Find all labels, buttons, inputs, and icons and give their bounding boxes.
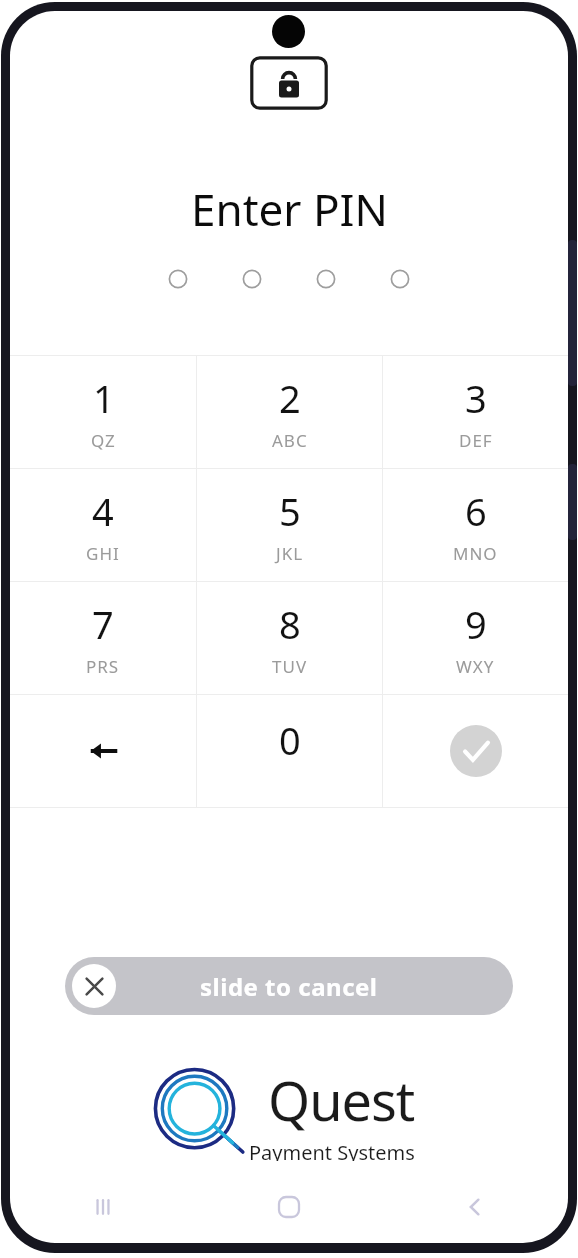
staticText: slide to cancel — [200, 970, 378, 1003]
button[interactable]: Back — [382, 1181, 568, 1233]
button[interactable]: Recent apps — [10, 1181, 196, 1233]
staticText: 5 — [279, 485, 301, 537]
staticText: Payment Systems — [249, 1139, 415, 1161]
staticText: Quest — [268, 1063, 415, 1137]
staticText: 7 — [92, 598, 114, 650]
staticText: PRS — [86, 655, 120, 678]
button[interactable]: 0 — [197, 695, 382, 807]
staticText: Enter PIN — [191, 179, 388, 239]
button[interactable]: Confirm — [383, 695, 568, 807]
staticText: MNO — [453, 542, 498, 565]
staticText: 4 — [92, 485, 114, 537]
staticText: GHI — [86, 542, 120, 565]
staticText: 2 — [279, 372, 301, 424]
staticText: 3 — [465, 372, 487, 424]
staticText: 8 — [279, 598, 301, 650]
other: Cancel — [72, 964, 116, 1008]
button[interactable]: 1 — [10, 356, 196, 468]
staticText: WXY — [456, 655, 495, 678]
staticText: 6 — [465, 485, 487, 537]
button[interactable]: Backspace — [10, 695, 196, 807]
staticText: DEF — [459, 429, 493, 452]
staticText: JKL — [276, 542, 304, 565]
staticText: 9 — [465, 598, 487, 650]
button[interactable]: 8 — [197, 582, 382, 694]
button[interactable]: Home — [196, 1181, 382, 1233]
button[interactable]: 4 — [10, 469, 196, 581]
button[interactable]: 7 — [10, 582, 196, 694]
button[interactable]: 2 — [197, 356, 382, 468]
staticText: QZ — [91, 429, 116, 452]
button[interactable]: slide to cancel — [65, 957, 513, 1015]
staticText: TUV — [272, 655, 308, 678]
button[interactable]: 3 — [383, 356, 568, 468]
staticText: ABC — [272, 429, 308, 452]
staticText: 1 — [93, 372, 115, 424]
button[interactable]: 9 — [383, 582, 568, 694]
staticText: 0 — [279, 714, 301, 766]
button[interactable]: 5 — [197, 469, 382, 581]
button[interactable]: 6 — [383, 469, 568, 581]
